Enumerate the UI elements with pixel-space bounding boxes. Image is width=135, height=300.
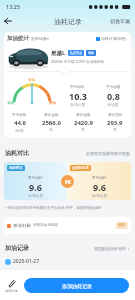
- staticText: 升: [113, 128, 117, 133]
- button[interactable]: 油耗计算说明: [96, 36, 128, 41]
- staticText: 认证车主: [70, 51, 82, 55]
- button[interactable]: 查找附近特价油站 ›: [94, 246, 130, 251]
- staticText: • 您与全国同车系列辆重车主平台油耗 持平，希望您继续保持: [5, 205, 102, 210]
- staticText: 平均价格: [12, 113, 27, 118]
- staticText: 全国同车系: [72, 166, 89, 170]
- staticText: 平均油量: [106, 85, 121, 90]
- button[interactable]: 全国同车系数据每日更新: [86, 151, 130, 156]
- staticText: 省钱加油优惠券: [33, 223, 59, 228]
- staticText: 费油: [49, 101, 57, 106]
- staticText: 升/百公里: [70, 102, 85, 107]
- staticText: 9.6: [29, 181, 42, 193]
- staticText: 10.3: [69, 90, 87, 102]
- staticText: 9.6: [93, 181, 106, 193]
- staticText: 升/百公里: [28, 193, 43, 198]
- staticText: 累计金额: [44, 113, 59, 118]
- staticText: 升/百公里: [92, 193, 107, 198]
- staticText: 油耗计算说明: [101, 36, 125, 41]
- staticText: 我的爱车: [9, 166, 23, 170]
- staticText: 44.6: [14, 119, 26, 127]
- staticText: 2566.0: [42, 119, 61, 127]
- staticText: ›: [125, 36, 128, 41]
- staticText: ▾: [47, 37, 49, 41]
- staticText: 0.8: [107, 90, 120, 102]
- staticText: 元/公里: [107, 102, 119, 107]
- staticText: 省油: [7, 101, 15, 106]
- staticText: 平均油耗: [28, 176, 43, 181]
- button[interactable]: 切换车辆: [110, 18, 130, 24]
- staticText: 全部记录: [31, 36, 47, 41]
- staticText: PK: [65, 179, 71, 185]
- button[interactable]: Back: [0, 13, 16, 29]
- staticText: 加油补贴: [13, 223, 31, 229]
- staticText: 2025款 东方曜 2.0TD 自动领航版: [51, 59, 105, 64]
- button[interactable]: 油耗心得: [5, 278, 18, 293]
- staticText: 累计油量: [76, 113, 91, 118]
- staticText: 加油记录: [5, 244, 29, 252]
- staticText: 13:25: [6, 3, 21, 10]
- staticText: 油耗心得: [5, 289, 18, 293]
- staticText: 添加油耗记录: [62, 283, 92, 289]
- staticText: 升: [81, 128, 85, 133]
- button[interactable]: 加油补贴: [4, 217, 131, 234]
- staticText: 元: [49, 128, 53, 133]
- button[interactable]: 添加油耗记录: [24, 278, 129, 293]
- staticText: 编辑: [88, 51, 94, 55]
- button[interactable]: 2025-01-27: [5, 258, 130, 265]
- staticText: 油耗对比: [5, 149, 29, 157]
- staticText: 元/升: [15, 128, 24, 133]
- staticText: 2025-01-27: [13, 258, 40, 265]
- button[interactable]: 全部记录: [31, 36, 49, 41]
- staticText: 油耗记录: [54, 17, 82, 26]
- staticText: 293.9: [107, 119, 123, 127]
- staticText: 领取: [118, 223, 126, 228]
- staticText: 省油: [28, 78, 36, 83]
- staticText: 星越L: [51, 49, 66, 57]
- staticText: 平均油耗: [70, 85, 85, 90]
- staticText: 累计里程: [108, 113, 123, 118]
- staticText: 加油统计: [7, 35, 29, 42]
- staticText: 2420.9: [74, 119, 93, 127]
- staticText: 平均油耗: [92, 176, 107, 181]
